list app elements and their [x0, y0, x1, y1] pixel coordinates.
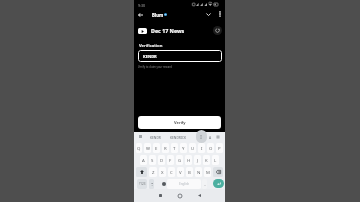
staticText: ?123: [139, 182, 146, 186]
button[interactable]: Back: [135, 9, 146, 20]
button[interactable]: Q: [136, 143, 142, 153]
staticText: Z: [152, 169, 155, 175]
staticText: I: [201, 145, 203, 151]
button[interactable]: Settings: [216, 135, 220, 139]
staticText: 9:30: [138, 3, 146, 8]
button[interactable]: Shift: [136, 167, 147, 177]
staticText: Dec 17 News: [151, 27, 185, 34]
button[interactable]: O: [207, 143, 214, 153]
button[interactable]: Refresh: [213, 26, 222, 35]
staticText: H: [187, 157, 191, 163]
button[interactable]: D: [158, 155, 165, 165]
staticText: E: [155, 145, 158, 151]
button[interactable]: A: [140, 155, 147, 165]
button[interactable]: P: [216, 143, 223, 153]
staticText: Blum: [152, 12, 164, 18]
button[interactable]: Comma: [149, 179, 154, 189]
staticText: R: [164, 145, 167, 151]
button[interactable]: More options: [214, 8, 225, 19]
button[interactable]: KENDRICK: [170, 135, 187, 139]
staticText: T: [173, 145, 176, 151]
button[interactable]: Recents: [156, 191, 165, 200]
staticText: D: [160, 157, 164, 163]
button[interactable]: Period: [202, 179, 207, 189]
button[interactable]: F: [167, 155, 174, 165]
staticText: L: [214, 157, 217, 163]
button[interactable]: Enter: [213, 179, 224, 188]
staticText: Verify: [174, 120, 186, 126]
staticText: S: [151, 157, 154, 163]
staticText: P: [218, 145, 221, 151]
staticText: U: [191, 145, 195, 151]
button[interactable]: English: [167, 179, 201, 189]
button[interactable]: Backspace: [213, 167, 223, 177]
button[interactable]: V: [177, 167, 184, 177]
staticText: Verify to claim your reward: [138, 65, 172, 69]
staticText: Q: [137, 145, 141, 151]
staticText: Verification: [139, 42, 163, 48]
button[interactable]: M: [204, 167, 211, 177]
button[interactable]: G: [176, 155, 183, 165]
button[interactable]: L: [212, 155, 219, 165]
button[interactable]: Z: [149, 167, 157, 177]
staticText: I: [200, 133, 203, 141]
button[interactable]: R: [162, 143, 169, 153]
button[interactable]: K: [203, 155, 210, 165]
button[interactable]: U: [189, 143, 196, 153]
button[interactable]: Verify: [138, 116, 221, 129]
button[interactable]: S: [149, 155, 156, 165]
staticText: M: [206, 169, 210, 175]
staticText: English: [179, 182, 190, 186]
staticText: Y: [182, 145, 185, 151]
button[interactable]: B: [186, 167, 193, 177]
button[interactable]: Expand: [202, 8, 214, 20]
button[interactable]: KENDR: [150, 135, 161, 139]
button[interactable]: KENDR: [138, 50, 222, 62]
staticText: W: [146, 145, 150, 151]
button[interactable]: A: [209, 135, 212, 139]
staticText: B: [188, 169, 191, 175]
button[interactable]: ?123: [137, 179, 147, 189]
staticText: N: [197, 169, 201, 175]
button[interactable]: Emoji: [160, 179, 168, 189]
staticText: X: [161, 169, 164, 175]
staticText: G: [178, 157, 182, 163]
button[interactable]: C: [168, 167, 175, 177]
button[interactable]: I: [198, 143, 205, 153]
staticText: C: [170, 169, 173, 175]
staticText: KENDR: [143, 54, 157, 59]
button[interactable]: N: [195, 167, 202, 177]
button[interactable]: Y: [180, 143, 187, 153]
button[interactable]: T: [171, 143, 178, 153]
button[interactable]: H: [185, 155, 192, 165]
button[interactable]: Home: [175, 191, 184, 200]
button[interactable]: X: [159, 167, 166, 177]
staticText: O: [209, 145, 213, 151]
button[interactable]: E: [153, 143, 160, 153]
button[interactable]: J: [194, 155, 201, 165]
button[interactable]: Back: [195, 191, 204, 200]
button[interactable]: W: [144, 143, 151, 153]
staticText: J: [197, 157, 199, 163]
staticText: V: [179, 169, 182, 175]
staticText: F: [169, 157, 172, 163]
staticText: K: [205, 157, 208, 163]
staticText: A: [142, 157, 145, 163]
